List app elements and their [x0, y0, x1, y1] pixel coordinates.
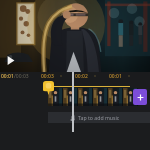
- staticText: 00:01: [109, 73, 122, 80]
- button[interactable]: Play: [3, 53, 17, 67]
- button[interactable]: Tap to add music: [48, 112, 150, 123]
- staticText: 00:03: [41, 73, 54, 80]
- button[interactable]: [48, 88, 138, 106]
- staticText: 00:01: [1, 73, 14, 80]
- staticText: 00:02: [75, 73, 88, 80]
- staticText: /00:03: [14, 73, 29, 80]
- button[interactable]: Add clip: [133, 89, 147, 105]
- staticText: Tap to add music: [78, 114, 120, 121]
- button[interactable]: Keyframe marker: [43, 81, 54, 95]
